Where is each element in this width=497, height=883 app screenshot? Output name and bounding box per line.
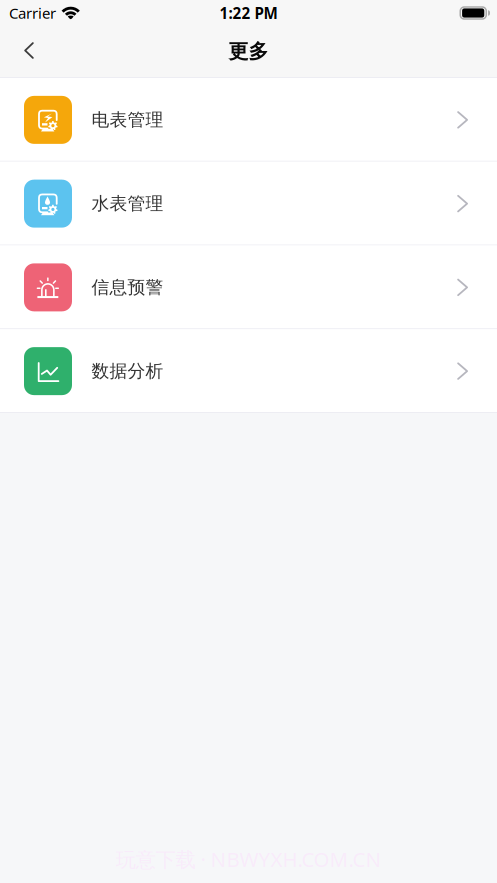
button[interactable]: 水表管理 (0, 162, 497, 246)
button[interactable]: 数据分析 (0, 329, 497, 413)
button[interactable]: Back (5, 29, 53, 73)
staticText: 数据分析 (91, 360, 163, 382)
button[interactable]: 电表管理 (0, 78, 497, 162)
staticText: 玩意下载 · NBWYXH.COM.CN (115, 845, 381, 873)
staticText: 水表管理 (91, 192, 163, 215)
staticText: Carrier (9, 3, 56, 23)
staticText: 1:22 PM (219, 3, 277, 23)
staticText: 信息预警 (91, 276, 163, 298)
staticText: 电表管理 (91, 109, 163, 131)
button[interactable]: 信息预警 (0, 245, 497, 329)
staticText: 更多 (228, 39, 268, 64)
